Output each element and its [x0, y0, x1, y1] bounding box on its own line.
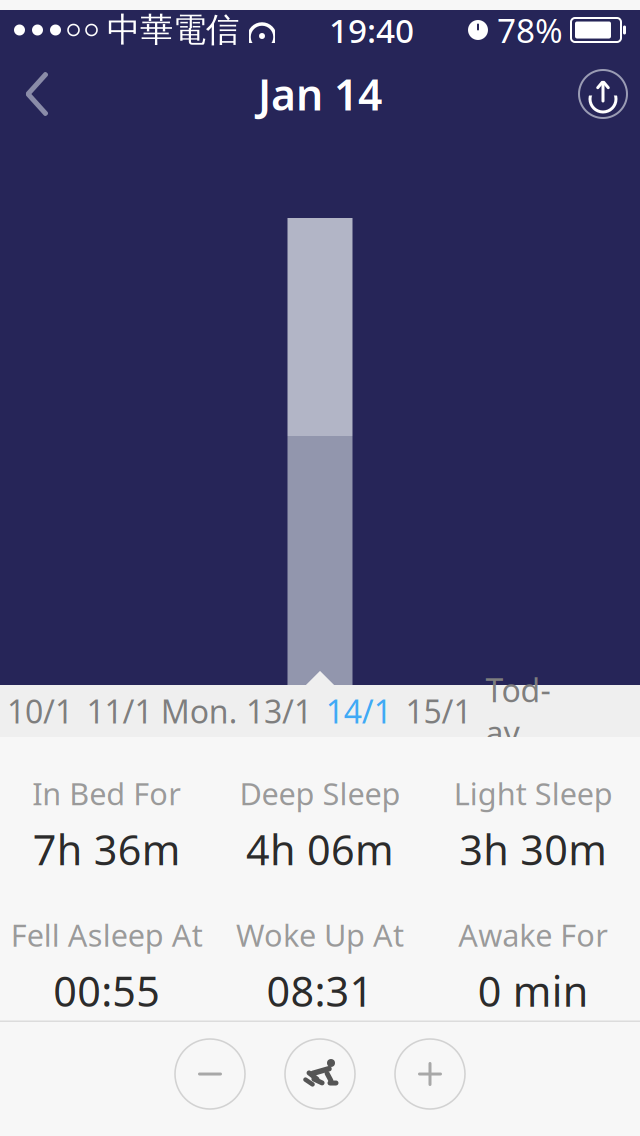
staticText: 13/1: [246, 690, 312, 732]
button[interactable]: 13/1: [239, 685, 319, 737]
staticText: 11/1: [87, 690, 153, 732]
staticText: Deep Sleep: [239, 773, 400, 814]
staticText: Mon.: [161, 690, 238, 732]
staticText: Fell Asleep At: [11, 915, 203, 955]
staticText: Awake For: [458, 915, 608, 955]
staticText: In Bed For: [32, 773, 181, 814]
staticText: 14/1: [326, 690, 392, 732]
staticText: 19:40: [329, 8, 414, 52]
staticText: Jan 14: [258, 66, 382, 122]
button[interactable]: 14/1: [319, 685, 399, 737]
staticText: 00:55: [53, 963, 160, 1018]
button[interactable]: Activity: [284, 1038, 356, 1110]
button[interactable]: Decrease: [174, 1038, 246, 1110]
button[interactable]: 15/1: [399, 685, 478, 737]
staticText: 10/1: [7, 690, 73, 732]
button[interactable]: Share: [566, 50, 640, 138]
staticText: 3h 30m: [459, 822, 607, 877]
staticText: 4h 06m: [246, 822, 394, 877]
button[interactable]: Mon.: [159, 685, 239, 737]
button[interactable]: 10/1: [0, 685, 80, 737]
staticText: Woke Up At: [236, 915, 404, 955]
button[interactable]: 11/1: [80, 685, 159, 737]
staticText: 0 min: [478, 963, 589, 1018]
staticText: Light Sleep: [454, 773, 613, 814]
staticText: 08:31: [266, 963, 373, 1018]
staticText: 7h 36m: [33, 822, 181, 877]
staticText: 中華電信: [107, 9, 239, 50]
button[interactable]: Increase: [394, 1038, 466, 1110]
button[interactable]: Back: [0, 50, 74, 138]
staticText: Today: [486, 668, 551, 753]
button[interactable]: Today: [478, 685, 558, 737]
staticText: 78%: [497, 8, 563, 52]
staticText: 15/1: [405, 690, 471, 732]
